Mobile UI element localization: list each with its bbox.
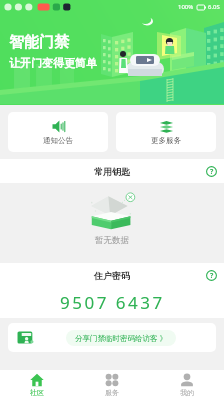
staticText: 通知公告 — [43, 136, 73, 145]
button[interactable]: Help — [206, 270, 217, 281]
staticText: 100% — [178, 3, 194, 11]
button[interactable]: Help — [206, 166, 217, 177]
staticText: 我的 — [180, 388, 194, 397]
staticText: 暂无数据 — [95, 235, 129, 246]
button[interactable]: 服务 — [74, 370, 149, 400]
staticText: 9507 6437 — [60, 291, 165, 314]
staticText: ? — [210, 271, 214, 281]
staticText: 智能门禁 — [9, 33, 69, 52]
button[interactable]: 社区 — [0, 370, 74, 400]
staticText: 分享门禁临时密码给访客 》 — [75, 333, 167, 343]
staticText: 6.0S — [208, 3, 220, 11]
staticText: 让开门变得更简单 — [9, 56, 97, 70]
button[interactable]: 我的 — [149, 370, 224, 400]
staticText: ? — [210, 167, 214, 177]
button[interactable]: 分享门禁临时密码给访客 》 — [66, 330, 176, 346]
button[interactable]: 通知公告 — [8, 112, 108, 152]
staticText: 常用钥匙 — [94, 166, 130, 177]
button[interactable]: 更多服务 — [116, 112, 216, 152]
staticText: 服务 — [105, 388, 119, 397]
staticText: 住户密码 — [94, 270, 130, 281]
staticText: 社区 — [30, 388, 44, 397]
staticText: 更多服务 — [151, 136, 181, 145]
